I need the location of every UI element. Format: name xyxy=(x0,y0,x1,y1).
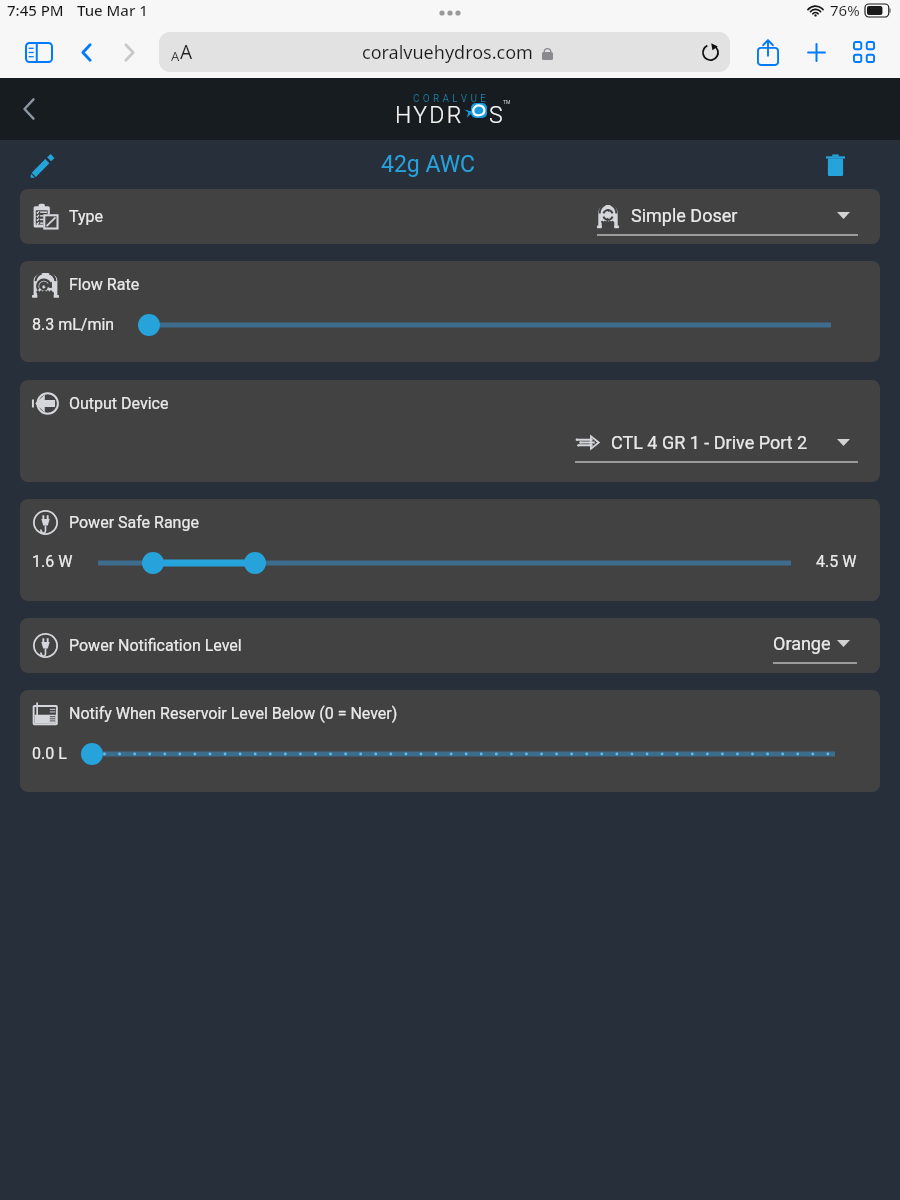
button[interactable]: Back xyxy=(8,88,50,130)
staticText: S xyxy=(489,102,505,126)
staticText: coralvuehydros.com xyxy=(362,40,533,65)
staticText: Power Notification Level xyxy=(69,636,242,655)
button[interactable]: Back xyxy=(66,32,106,72)
button[interactable]: Reload xyxy=(694,36,726,68)
button[interactable]: Flow Rate xyxy=(20,261,880,362)
staticText: A xyxy=(171,47,180,65)
button[interactable]: Notify When Reservoir Level Below (0 = N… xyxy=(20,690,880,792)
staticText: 4.5 W xyxy=(816,552,857,571)
button[interactable]: New tab xyxy=(796,32,836,72)
button[interactable]: Edit xyxy=(22,145,62,185)
staticText: 7:45 PM xyxy=(7,0,64,20)
staticText: Orange xyxy=(773,633,831,654)
staticText: CTL 4 GR 1 - Drive Port 2 xyxy=(611,432,808,453)
button[interactable]: Share xyxy=(748,32,788,72)
staticText: Notify When Reservoir Level Below (0 = N… xyxy=(69,704,398,723)
button[interactable]: Tabs xyxy=(844,32,884,72)
staticText: 1.6 W xyxy=(32,552,73,571)
staticText: 8.3 mL/min xyxy=(32,315,115,334)
button[interactable]: A xyxy=(159,32,730,72)
button[interactable]: Power Safe Range xyxy=(20,499,880,601)
staticText: HYDR xyxy=(395,102,464,126)
button[interactable]: Forward xyxy=(109,32,149,72)
staticText: C O R A L V U E xyxy=(413,93,487,105)
button[interactable]: Delete xyxy=(815,145,855,185)
button[interactable]: CTL 4 GR 1 - Drive Port 2 xyxy=(575,429,858,463)
button[interactable]: Output Device xyxy=(20,380,880,482)
button[interactable]: Power Notification Level xyxy=(20,618,880,673)
staticText: 42g AWC xyxy=(381,151,476,178)
button[interactable]: Sidebar xyxy=(19,32,59,72)
staticText: Simple Doser xyxy=(631,205,738,226)
staticText: TM xyxy=(503,99,511,105)
button[interactable]: Type xyxy=(20,189,880,244)
staticText: Power Safe Range xyxy=(69,513,199,532)
staticText: 0.0 L xyxy=(32,744,67,763)
button[interactable]: Orange xyxy=(773,630,857,664)
button[interactable]: Simple Doser xyxy=(597,202,858,236)
staticText: Flow Rate xyxy=(69,275,140,294)
staticText: A xyxy=(180,39,193,65)
staticText: Type xyxy=(69,207,104,226)
staticText: 76% xyxy=(830,0,860,20)
staticText: Tue Mar 1 xyxy=(77,0,148,20)
staticText: Output Device xyxy=(69,394,169,413)
